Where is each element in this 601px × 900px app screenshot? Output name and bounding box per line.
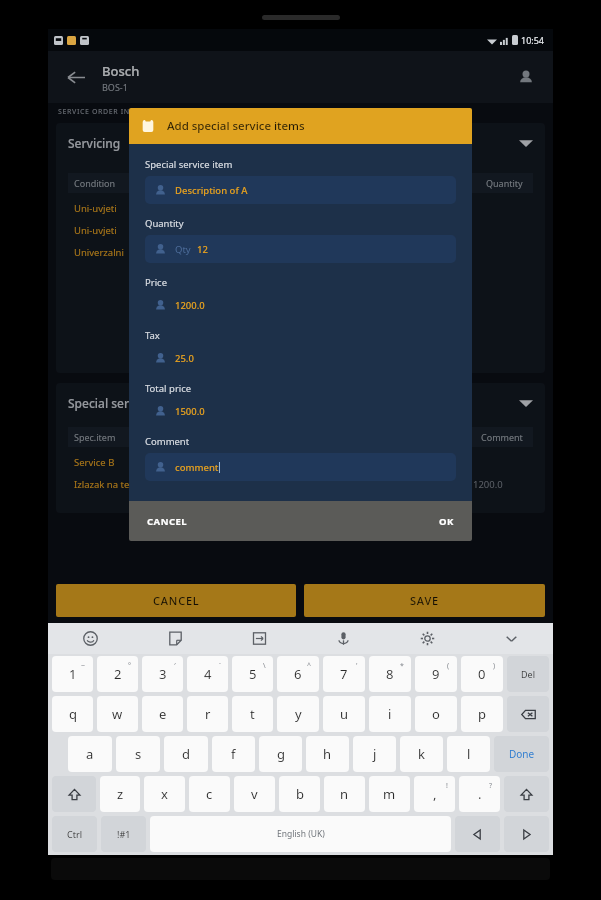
- staticText: !#1: [117, 828, 131, 840]
- button[interactable]: v: [234, 776, 275, 812]
- staticText: Add special service items: [167, 118, 305, 134]
- button[interactable]: SAVE: [304, 584, 545, 617]
- button[interactable]: [52, 776, 96, 812]
- staticText: Special services: [68, 395, 158, 411]
- button[interactable]: o: [415, 696, 457, 732]
- button[interactable]: b: [279, 776, 320, 812]
- staticText: o: [432, 705, 440, 723]
- button[interactable]: [504, 816, 549, 852]
- staticText: 8: [386, 665, 394, 683]
- staticText: ´: [219, 661, 221, 671]
- button[interactable]: f: [212, 736, 255, 772]
- staticText: r: [205, 705, 211, 723]
- button[interactable]: OK: [435, 511, 458, 532]
- button[interactable]: y: [277, 696, 319, 732]
- staticText: Quantity: [486, 177, 523, 189]
- staticText: Bosch: [102, 62, 140, 80]
- button[interactable]: 1200.0: [145, 294, 456, 316]
- button[interactable]: q: [52, 696, 93, 732]
- button[interactable]: 25.0: [145, 347, 456, 369]
- button[interactable]: g: [259, 736, 302, 772]
- button[interactable]: .: [459, 776, 500, 812]
- button[interactable]: Account: [509, 60, 543, 94]
- button[interactable]: Sticker: [133, 623, 217, 654]
- button[interactable]: Voice input: [301, 623, 385, 654]
- button[interactable]: CANCEL: [56, 584, 296, 617]
- button[interactable]: Qty: [145, 235, 456, 263]
- button[interactable]: h: [306, 736, 349, 772]
- staticText: Quantity: [145, 217, 184, 230]
- button[interactable]: Description of A: [145, 176, 456, 204]
- button[interactable]: Clipboard: [217, 623, 301, 654]
- button[interactable]: u: [323, 696, 365, 732]
- button[interactable]: a: [68, 736, 112, 772]
- staticText: Done: [509, 747, 535, 761]
- staticText: 1500.0: [175, 405, 205, 418]
- button[interactable]: 5: [232, 656, 273, 692]
- button[interactable]: n: [324, 776, 365, 812]
- button[interactable]: c: [189, 776, 230, 812]
- button[interactable]: 2: [97, 656, 138, 692]
- staticText: ,: [433, 785, 437, 803]
- button[interactable]: e: [142, 696, 183, 732]
- button[interactable]: 8: [369, 656, 411, 692]
- button[interactable]: x: [144, 776, 185, 812]
- button[interactable]: [507, 696, 549, 732]
- button[interactable]: Back: [58, 59, 94, 95]
- staticText: !: [446, 781, 448, 791]
- staticText: English (UK): [277, 828, 325, 840]
- button[interactable]: d: [164, 736, 208, 772]
- staticText: .: [478, 785, 482, 803]
- staticText: 10:54: [521, 34, 545, 46]
- button[interactable]: [455, 816, 500, 852]
- button[interactable]: Ctrl: [52, 816, 97, 852]
- button[interactable]: i: [369, 696, 411, 732]
- button[interactable]: z: [100, 776, 140, 812]
- button[interactable]: comment: [145, 453, 456, 481]
- staticText: Izlazak na teren: [74, 478, 145, 491]
- button[interactable]: 3: [142, 656, 183, 692]
- button[interactable]: 1: [52, 656, 93, 692]
- staticText: Del: [521, 668, 535, 680]
- staticText: j: [373, 745, 377, 763]
- staticText: Tax: [145, 329, 160, 342]
- staticText: 6: [294, 665, 302, 683]
- button[interactable]: l: [447, 736, 490, 772]
- button[interactable]: j: [353, 736, 396, 772]
- staticText: 0: [478, 665, 486, 683]
- button[interactable]: r: [187, 696, 228, 732]
- button[interactable]: 4: [187, 656, 228, 692]
- button[interactable]: Settings: [385, 623, 469, 654]
- button[interactable]: t: [232, 696, 273, 732]
- button[interactable]: 7: [323, 656, 365, 692]
- button[interactable]: 1500.0: [145, 400, 456, 422]
- button[interactable]: 0: [461, 656, 503, 692]
- staticText: 3: [159, 665, 167, 683]
- button[interactable]: w: [97, 696, 138, 732]
- button[interactable]: 6: [277, 656, 319, 692]
- button[interactable]: Emoji: [48, 623, 133, 654]
- button[interactable]: Del: [507, 656, 549, 692]
- button[interactable]: k: [400, 736, 443, 772]
- staticText: 5: [249, 665, 257, 683]
- staticText: u: [340, 705, 349, 723]
- button[interactable]: English (UK): [150, 816, 451, 852]
- staticText: z: [117, 785, 124, 803]
- staticText: Price: [145, 276, 168, 289]
- staticText: m: [383, 785, 396, 803]
- staticText: ′: [174, 661, 176, 671]
- button[interactable]: ,: [414, 776, 455, 812]
- staticText: a: [86, 745, 94, 763]
- button[interactable]: [504, 776, 549, 812]
- staticText: Description of A: [175, 184, 248, 197]
- button[interactable]: Done: [494, 736, 549, 772]
- staticText: v: [251, 785, 258, 803]
- button[interactable]: CANCEL: [143, 511, 192, 532]
- staticText: Special service item: [145, 158, 233, 171]
- button[interactable]: Hide keyboard: [469, 623, 553, 654]
- button[interactable]: m: [369, 776, 410, 812]
- button[interactable]: p: [461, 696, 503, 732]
- button[interactable]: 9: [415, 656, 457, 692]
- button[interactable]: s: [116, 736, 160, 772]
- button[interactable]: !#1: [101, 816, 146, 852]
